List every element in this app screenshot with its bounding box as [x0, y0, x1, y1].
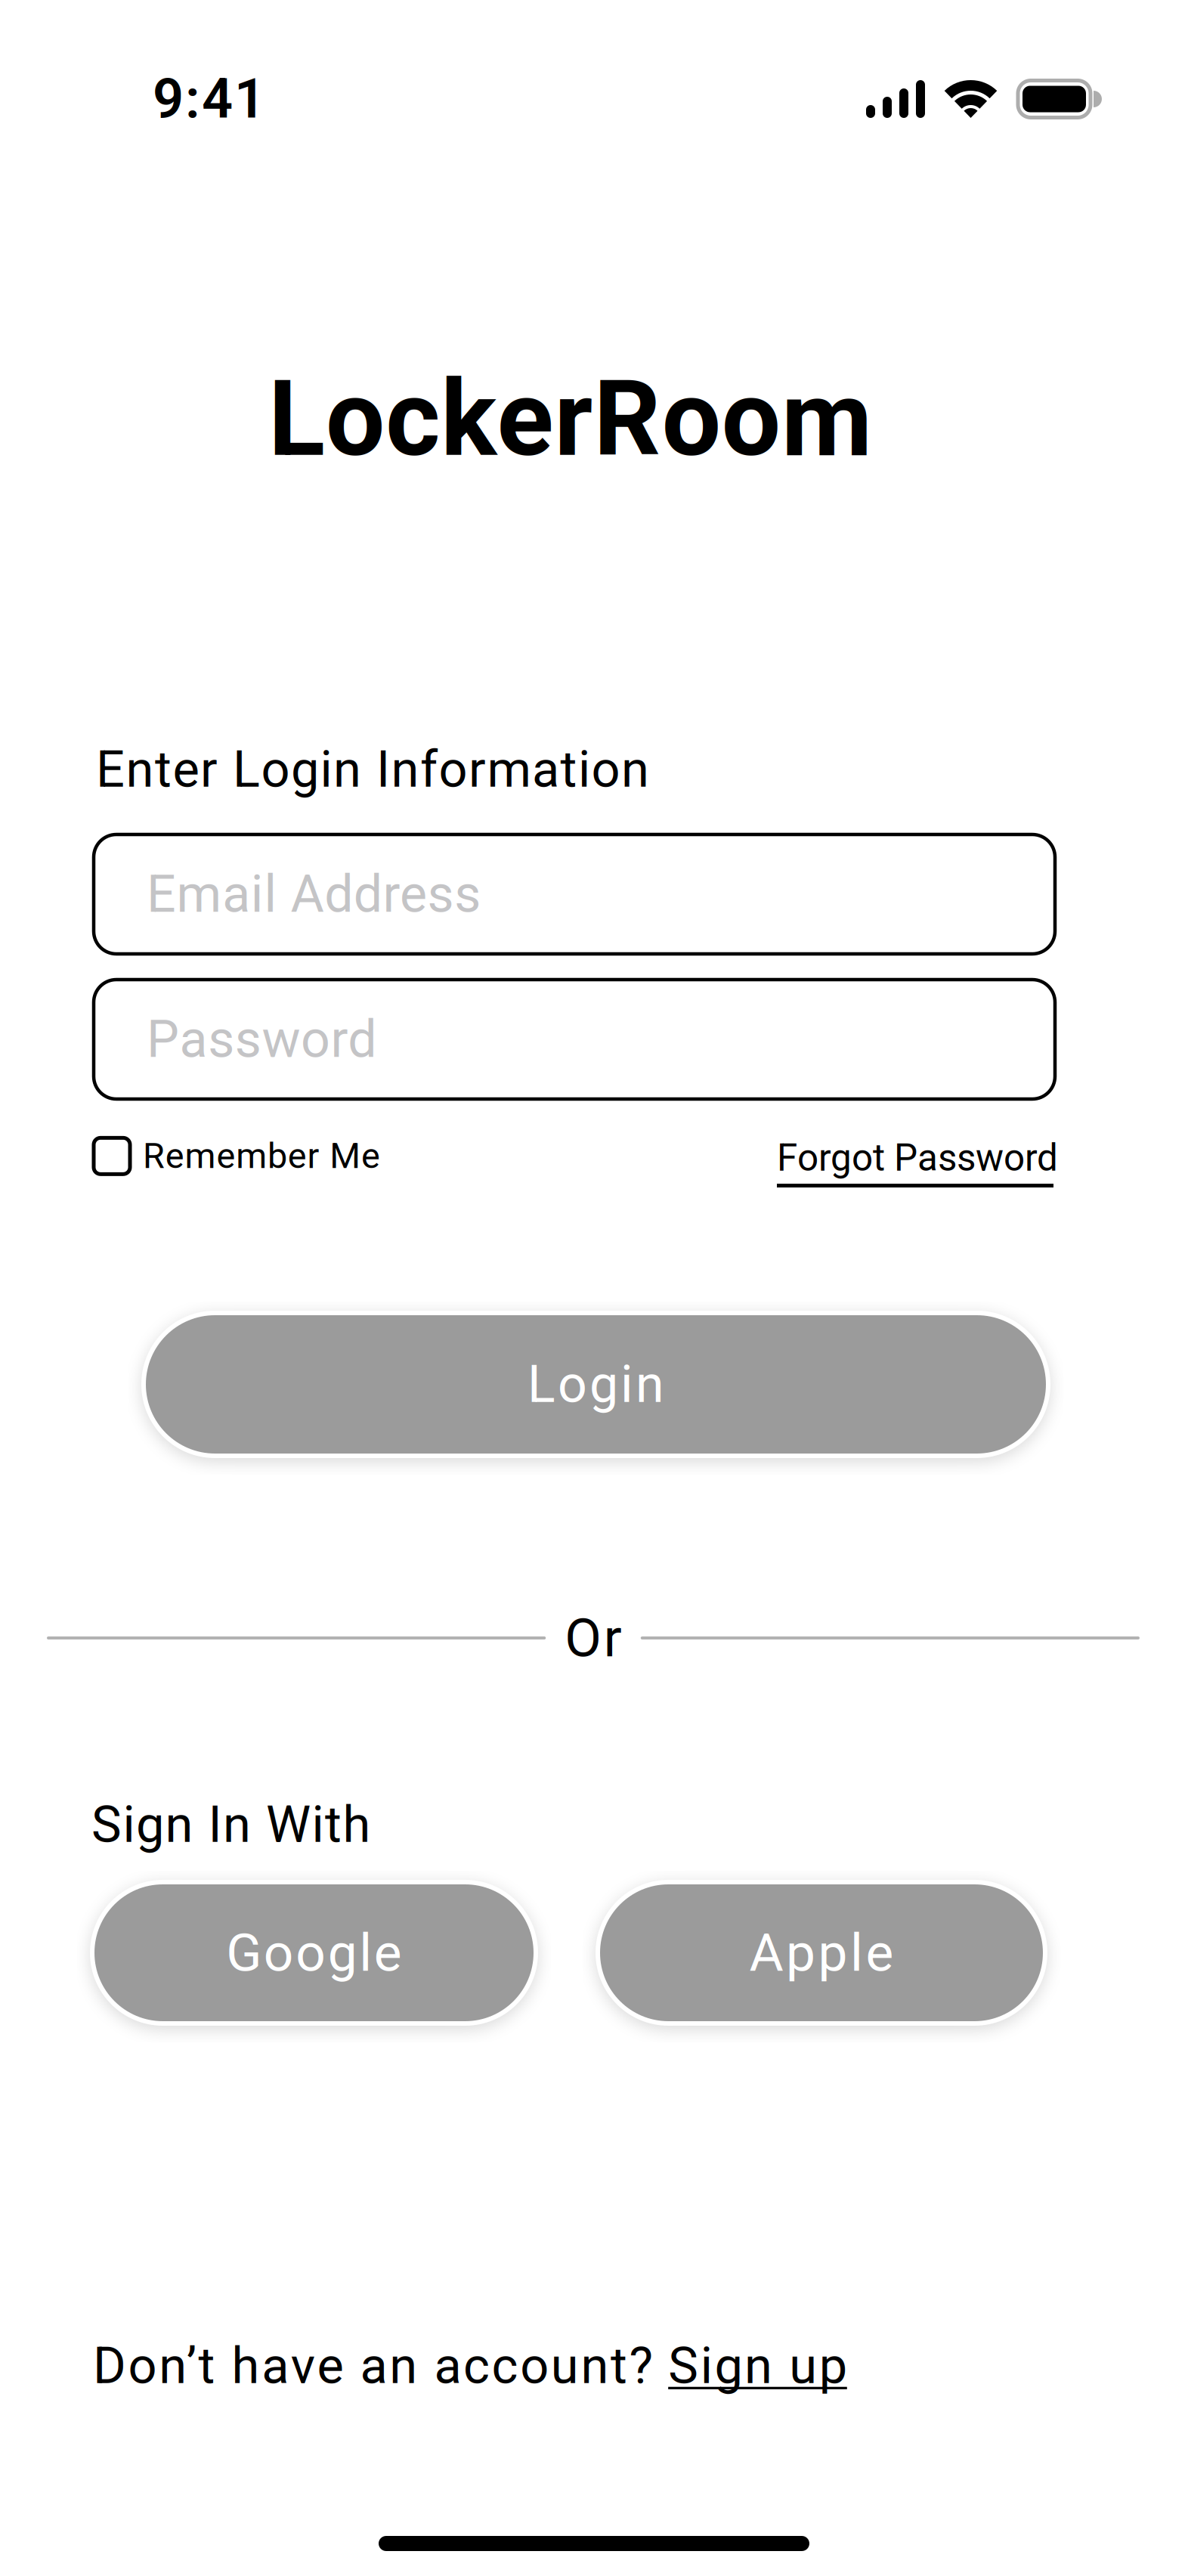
button[interactable]: Login	[144, 1313, 1048, 1456]
staticText: Apple	[749, 1922, 894, 1983]
staticText: Login	[527, 1354, 664, 1415]
button[interactable]: Forgot Password	[777, 1136, 1058, 1180]
button[interactable]: Don’t have an account?	[93, 2336, 847, 2395]
staticText: Sign In With	[91, 1795, 371, 1854]
staticText: Don’t have an account?	[93, 2336, 668, 2395]
staticText: Password	[147, 1009, 377, 1069]
staticText: Email Address	[147, 864, 481, 924]
staticText: Forgot Password	[777, 1136, 1058, 1180]
staticText: Sign up	[668, 2336, 847, 2395]
button[interactable]: Password	[94, 980, 1055, 1099]
button[interactable]: Google	[92, 1882, 536, 2023]
staticText: LockerRoom	[268, 358, 872, 480]
staticText: Google	[226, 1922, 402, 1983]
staticText: Enter Login Information	[96, 740, 649, 799]
button[interactable]: Remember Me	[94, 1135, 380, 1177]
staticText: Remember Me	[143, 1135, 380, 1177]
button[interactable]: Email Address	[94, 834, 1055, 954]
staticText: Or	[565, 1607, 622, 1669]
staticText: 9:41	[153, 67, 265, 131]
button[interactable]: Apple	[598, 1882, 1045, 2023]
